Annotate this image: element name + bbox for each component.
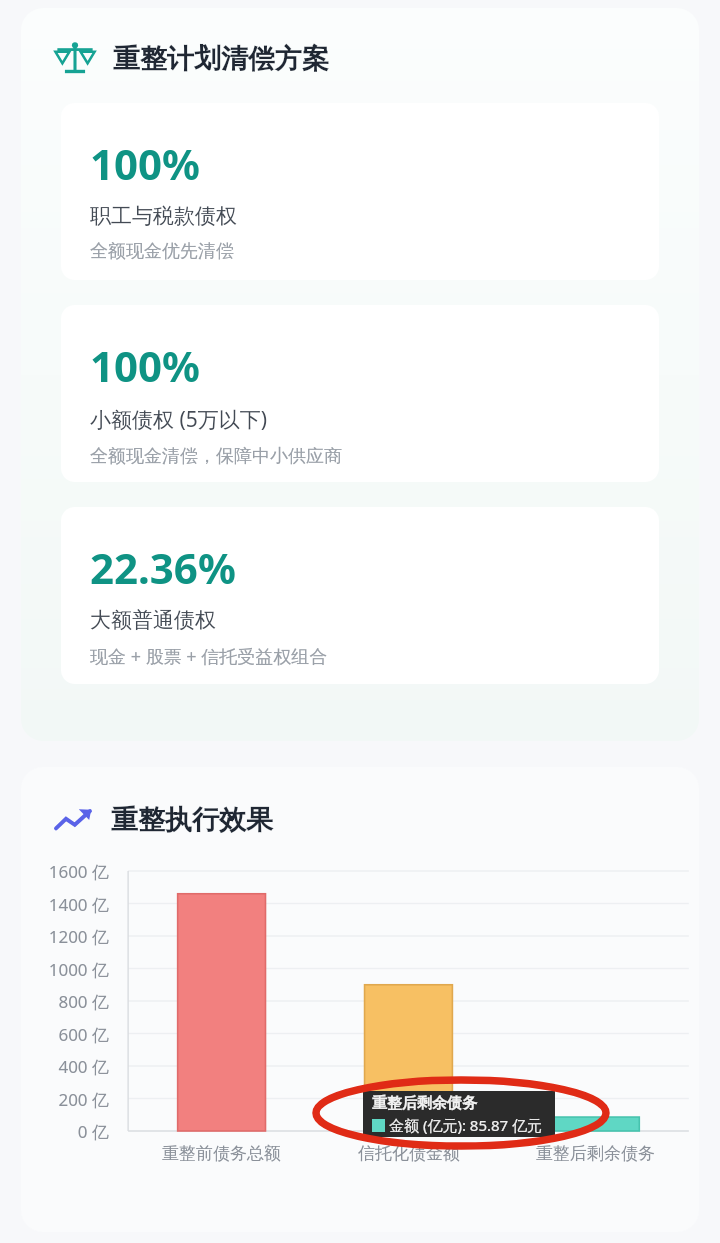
staticText: 小额债权 (5万以下) xyxy=(90,405,268,434)
staticText: 金额 (亿元): 85.87 亿元 xyxy=(389,1115,543,1135)
staticText: 全额现金清偿，保障中小供应商 xyxy=(90,445,342,468)
staticText: 800 亿 xyxy=(21,990,109,1013)
staticText: 1600 亿 xyxy=(21,860,109,883)
staticText: 1400 亿 xyxy=(21,893,109,916)
button[interactable]: 100% xyxy=(61,103,659,280)
staticText: 职工与税款债权 xyxy=(90,203,237,229)
other: Balance scale xyxy=(54,41,96,77)
button[interactable]: 22.36% xyxy=(61,507,659,684)
staticText: 大额普通债权 xyxy=(90,607,216,633)
staticText: 重整前债务总额 xyxy=(162,1143,281,1164)
staticText: 现金 + 股票 + 信托受益权组合 xyxy=(90,644,328,669)
staticText: 22.36% xyxy=(90,539,236,596)
staticText: 全额现金优先清偿 xyxy=(90,240,234,263)
staticText: 信托化债金额 xyxy=(358,1143,460,1164)
staticText: 1000 亿 xyxy=(21,958,109,981)
staticText: 重整执行效果 xyxy=(111,803,273,837)
button[interactable]: Balance scale xyxy=(54,41,329,77)
staticText: 200 亿 xyxy=(21,1088,109,1111)
staticText: 重整后剩余债务 xyxy=(536,1143,655,1164)
staticText: 0 亿 xyxy=(21,1120,109,1143)
staticText: 100% xyxy=(90,135,200,192)
other: Trending up xyxy=(54,805,94,835)
staticText: 400 亿 xyxy=(21,1055,109,1078)
button[interactable]: 重整后剩余债务 xyxy=(363,1091,555,1137)
staticText: 1200 亿 xyxy=(21,925,109,948)
staticText: 100% xyxy=(90,337,200,394)
button[interactable]: 100% xyxy=(61,305,659,482)
staticText: 重整后剩余债务 xyxy=(372,1094,477,1113)
staticText: 重整计划清偿方案 xyxy=(113,42,329,76)
staticText: 600 亿 xyxy=(21,1023,109,1046)
button[interactable]: Trending up xyxy=(54,803,273,837)
